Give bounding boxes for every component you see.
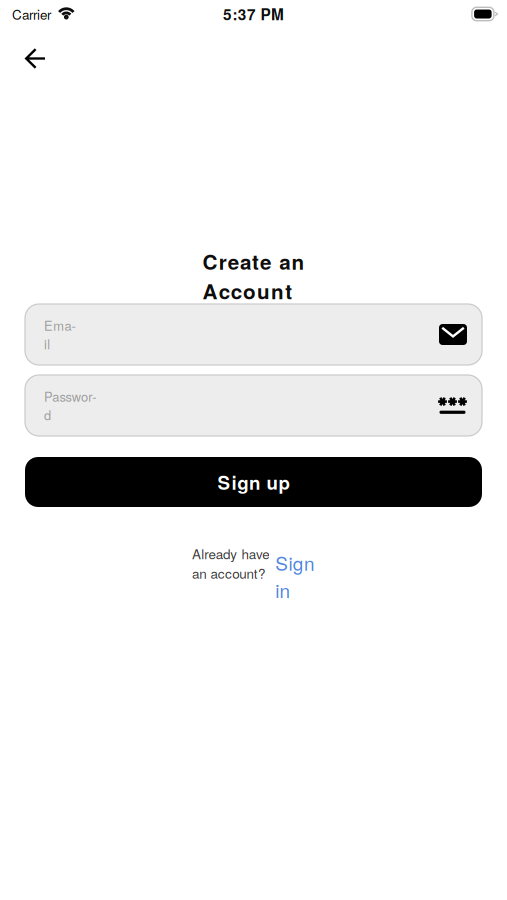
staticText: Carrier (12, 4, 51, 24)
button[interactable]: Sign in (275, 549, 315, 603)
staticText: Password (44, 387, 96, 424)
button[interactable]: Back (0, 28, 64, 81)
staticText: Already have an account? (192, 544, 269, 582)
staticText: Email (44, 316, 75, 353)
button[interactable]: Email (25, 304, 482, 365)
staticText: Sign in (275, 549, 315, 603)
staticText: Sign up (218, 468, 289, 495)
button[interactable]: Password (25, 375, 482, 436)
staticText: Create an Account (203, 246, 304, 306)
button[interactable]: Sign up (25, 457, 482, 507)
staticText: 5:37 PM (223, 3, 284, 25)
